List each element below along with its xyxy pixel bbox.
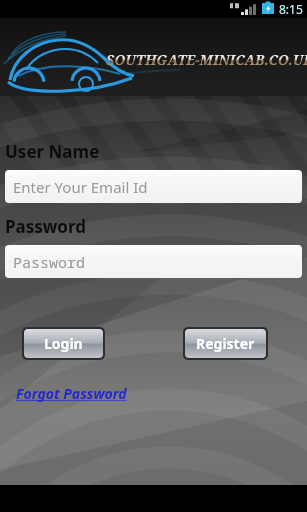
staticText: Enter Your Email Id [13,177,148,197]
button[interactable]: Enter Your Email Id [5,170,302,203]
staticText: SOUTHGATE-MINICAB.CO.UK [106,50,307,69]
staticText: User Name [5,140,100,163]
staticText: Password [13,252,86,272]
staticText: Password [5,215,86,238]
button[interactable]: Login [24,329,103,358]
button[interactable]: Password [5,245,302,278]
button[interactable]: Register [185,329,266,358]
staticText: Login [44,334,83,353]
button[interactable]: Forgot Password [14,382,129,405]
staticText: 8:15 [279,1,303,17]
staticText: Forgot Password [16,384,127,403]
staticText: Register [196,334,255,353]
